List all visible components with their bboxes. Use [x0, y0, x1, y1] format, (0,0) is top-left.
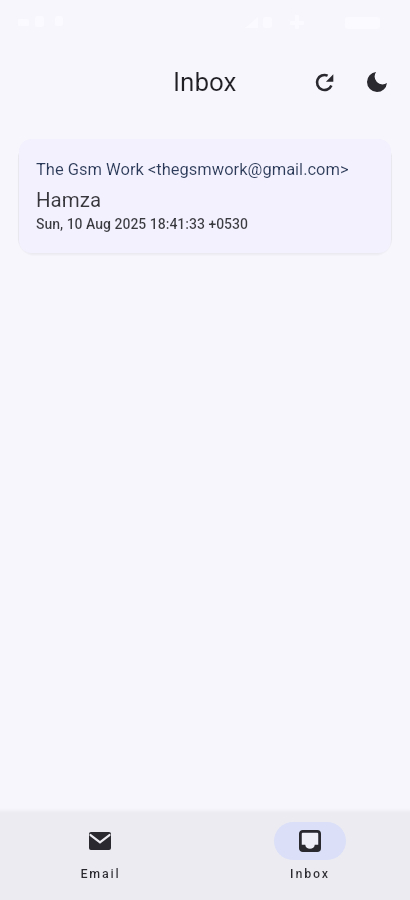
button[interactable]: Inbox: [258, 808, 362, 881]
staticText: Email: [80, 866, 121, 881]
staticText: Hamza: [36, 188, 102, 212]
button[interactable]: Toggle dark mode: [357, 62, 397, 102]
button[interactable]: The Gsm Work <thegsmwork@gmail.com>: [19, 139, 391, 253]
staticText: Sun, 10 Aug 2025 18:41:33 +0530: [36, 216, 248, 232]
staticText: Inbox: [173, 67, 237, 97]
button[interactable]: Refresh: [304, 62, 344, 102]
button[interactable]: Email: [48, 808, 152, 881]
staticText: The Gsm Work <thegsmwork@gmail.com>: [36, 160, 349, 179]
staticText: Inbox: [290, 866, 330, 881]
